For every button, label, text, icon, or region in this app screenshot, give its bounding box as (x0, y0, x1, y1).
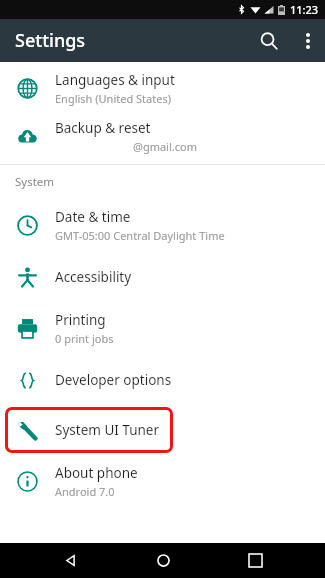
button[interactable]: More options (291, 24, 325, 58)
staticText: 0 print jobs (55, 331, 114, 346)
button[interactable]: Backup & reset (0, 112, 325, 160)
staticText: Developer options (55, 371, 172, 389)
button[interactable]: Recent apps (233, 543, 277, 578)
staticText: English (United States) (55, 91, 171, 106)
staticText: GMT-05:00 Central Daylight Time (55, 228, 225, 243)
staticText: Settings (15, 28, 86, 53)
staticText: Accessibility (55, 268, 132, 286)
button[interactable]: Search (247, 19, 291, 62)
button[interactable]: Date & time (0, 199, 325, 252)
button[interactable]: Accessibility (0, 252, 325, 302)
staticText: @gmail.com (133, 139, 197, 154)
button[interactable]: Languages & input (0, 64, 325, 112)
button[interactable]: Developer options (0, 355, 325, 405)
staticText: Printing (55, 311, 106, 329)
button[interactable]: Printing (0, 302, 325, 355)
button[interactable]: System UI Tuner (0, 405, 325, 455)
button[interactable]: Back (48, 543, 92, 578)
staticText: System (15, 174, 55, 190)
staticText: Languages & input (55, 71, 175, 89)
staticText: 11:23 (290, 2, 319, 17)
staticText: Android 7.0 (55, 484, 115, 499)
button[interactable]: About phone (0, 455, 325, 508)
staticText: Date & time (55, 208, 131, 226)
staticText: Backup & reset (55, 119, 151, 137)
button[interactable]: Home (141, 543, 185, 578)
staticText: About phone (55, 464, 138, 482)
staticText: System UI Tuner (55, 421, 160, 439)
